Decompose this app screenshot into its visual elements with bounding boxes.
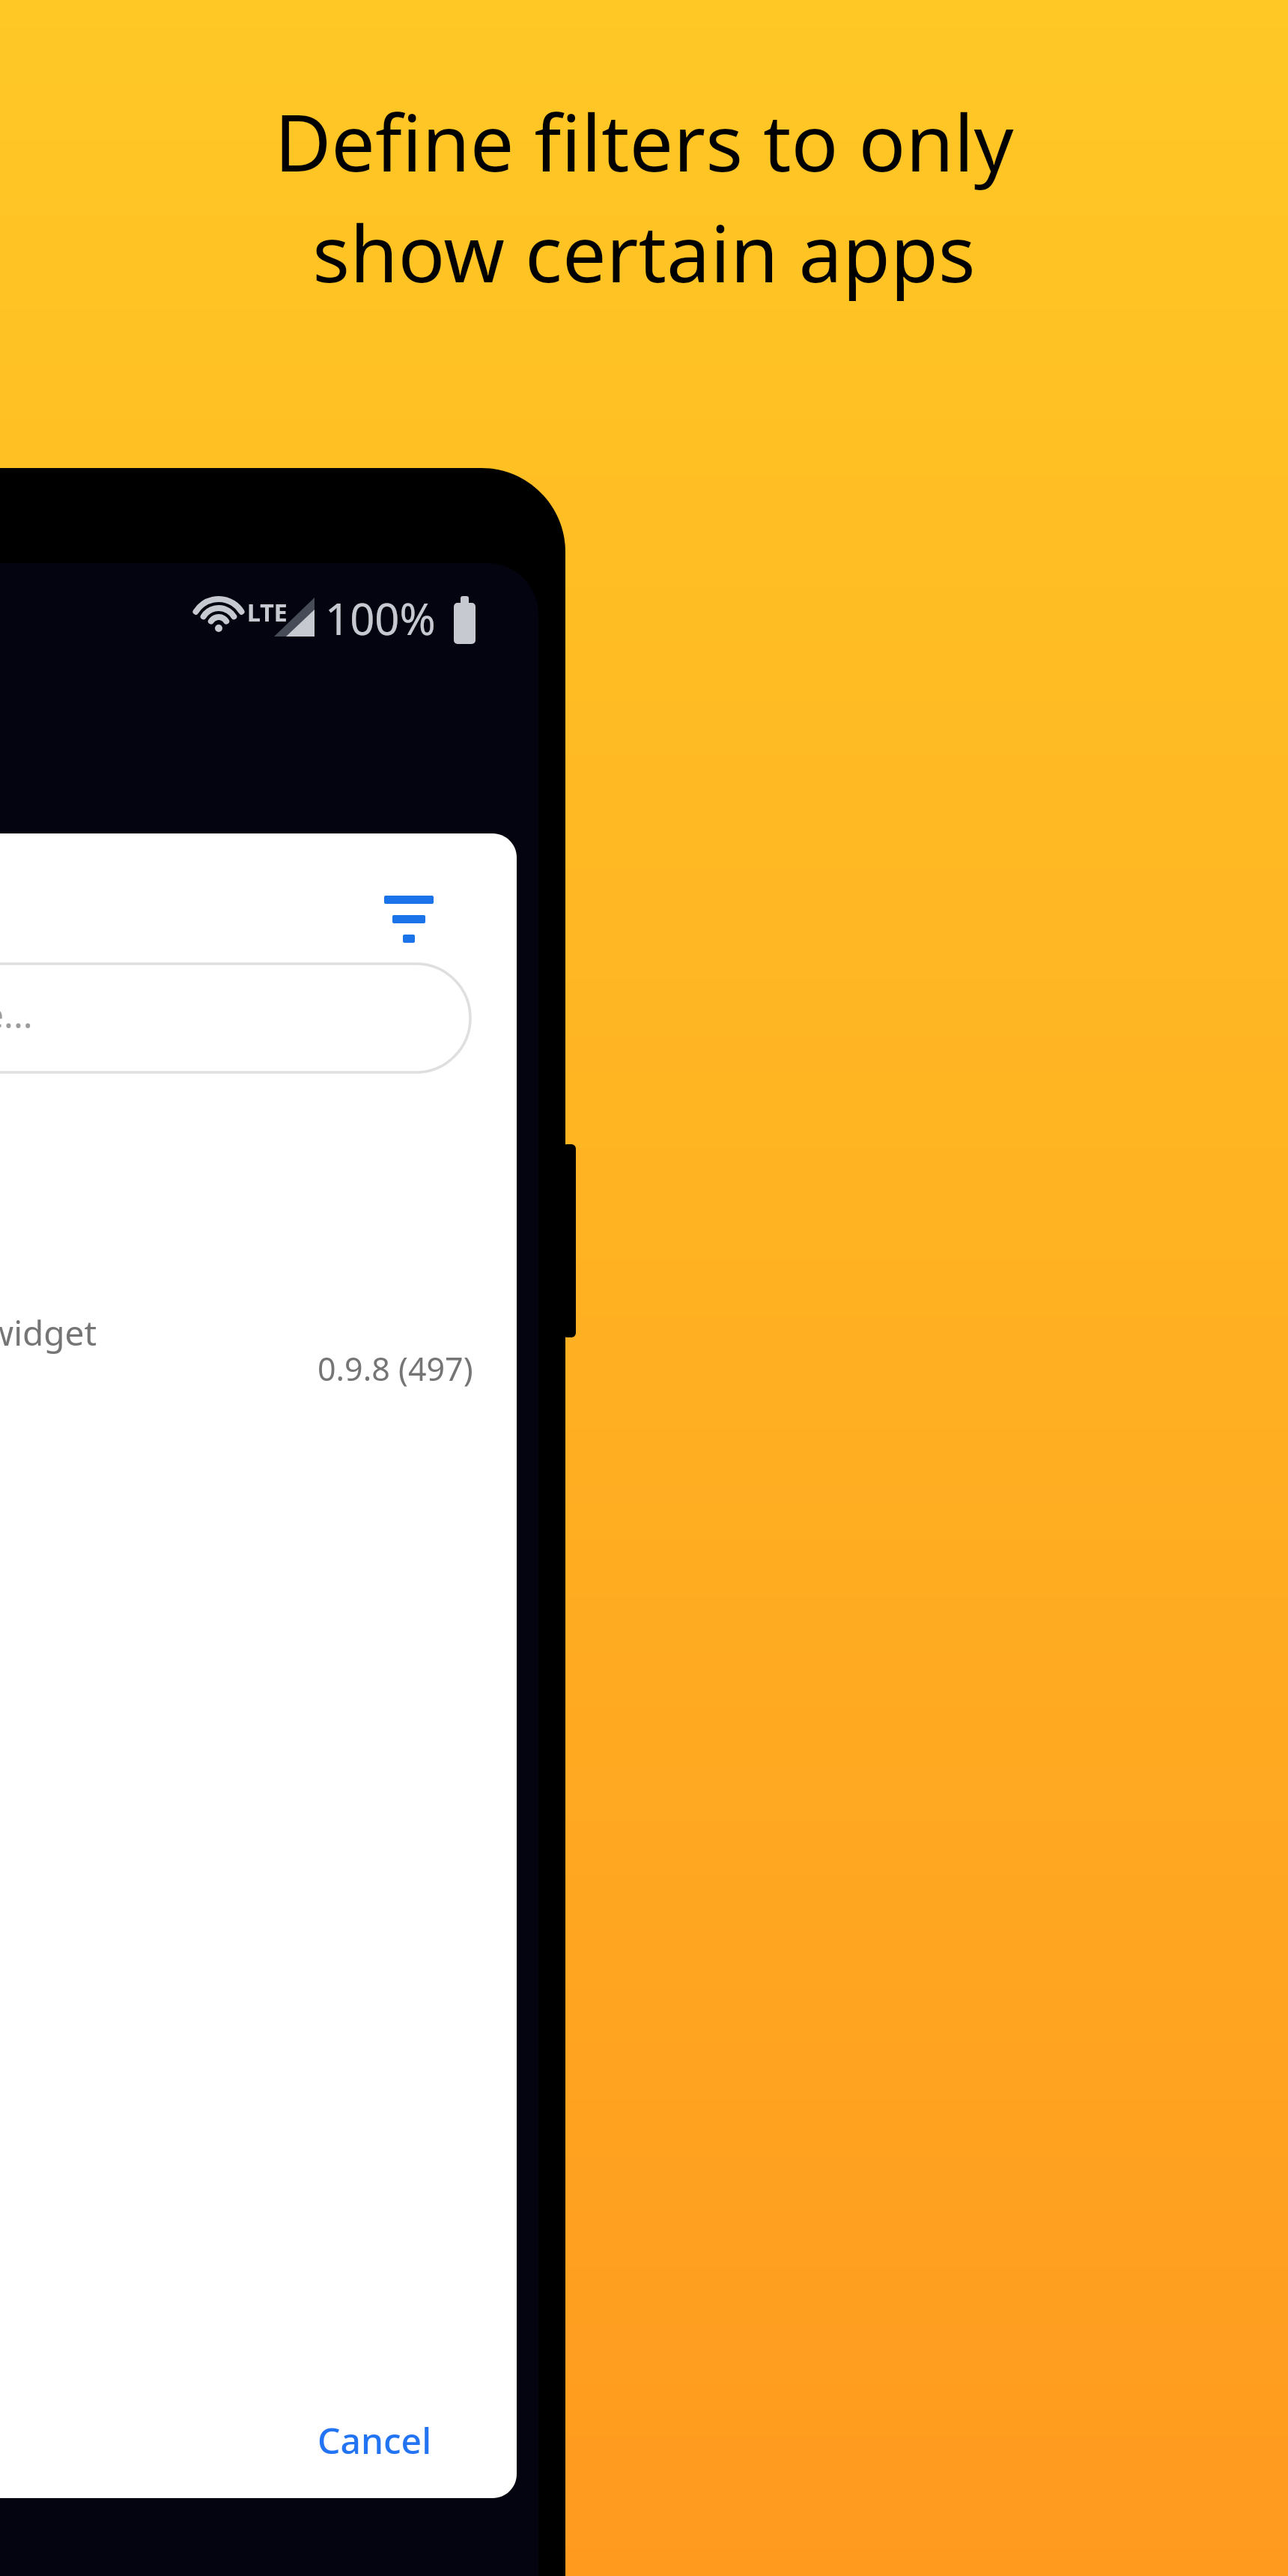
staticText: 100%: [325, 589, 436, 648]
staticText: Define filters to only show certain apps: [45, 88, 1243, 306]
staticText: LTE: [247, 596, 288, 629]
staticText: 0.9.8 (497): [318, 1346, 473, 1391]
button[interactable]: Cancel: [297, 2402, 453, 2478]
staticText: Cancel: [318, 2416, 432, 2464]
staticText: widget: [0, 1309, 97, 1356]
staticText: e...: [0, 990, 33, 1039]
button[interactable]: Filter: [368, 861, 452, 945]
